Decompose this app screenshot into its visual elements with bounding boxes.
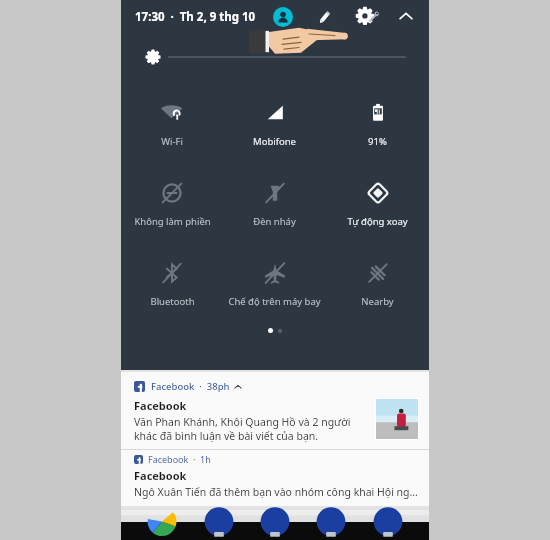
button[interactable]: App (260, 524, 290, 540)
staticText: Nearby (361, 295, 394, 308)
staticText: Chế độ trên máy bay (228, 295, 321, 308)
button[interactable]: Đèn nháy (223, 166, 326, 238)
button[interactable]: Nearby (326, 246, 429, 318)
button[interactable]: App (147, 524, 177, 540)
button[interactable]: Chế độ trên máy bay (223, 246, 326, 318)
button[interactable]: Facebook · 38ph (121, 372, 429, 449)
button[interactable]: App (204, 524, 234, 540)
staticText: Facebook (134, 468, 187, 483)
button[interactable]: Không làm phiền (121, 166, 223, 238)
staticText: 91% (368, 135, 387, 148)
button[interactable]: Brightness (143, 42, 405, 72)
button[interactable]: Settings (353, 2, 383, 32)
staticText: Văn Phan Khánh, Khôi Quang Hồ và 2 người… (134, 415, 367, 443)
staticText: Tự động xoay (347, 215, 408, 228)
staticText: Đèn nháy (253, 215, 296, 228)
staticText: Ngô Xuân Tiến đã thêm bạn vào nhóm công … (134, 485, 419, 499)
button[interactable]: Mobifone (223, 86, 326, 158)
staticText: Không làm phiền (134, 215, 211, 228)
button[interactable]: Wi-Fi (121, 86, 223, 158)
button[interactable]: Collapse (393, 4, 419, 30)
button[interactable]: Bluetooth (121, 246, 223, 318)
staticText: Facebook · 38ph (151, 380, 230, 393)
staticText: Facebook (134, 398, 187, 413)
button[interactable]: Edit tiles (313, 6, 335, 28)
button[interactable]: App (373, 524, 403, 540)
other: Pointer hand (249, 8, 349, 60)
button[interactable]: 91% (326, 86, 429, 158)
staticText: Mobifone (253, 135, 296, 148)
staticText: Bluetooth (150, 295, 195, 308)
staticText: 17:30 · Th 2, 9 thg 10 (135, 9, 256, 25)
button[interactable]: Tự động xoay (326, 166, 429, 238)
button[interactable]: User account (273, 7, 293, 27)
button[interactable]: Facebook · 1h (121, 450, 429, 506)
button[interactable]: App (316, 524, 346, 540)
staticText: Facebook · 1h (148, 453, 211, 465)
staticText: Wi-Fi (161, 135, 183, 148)
